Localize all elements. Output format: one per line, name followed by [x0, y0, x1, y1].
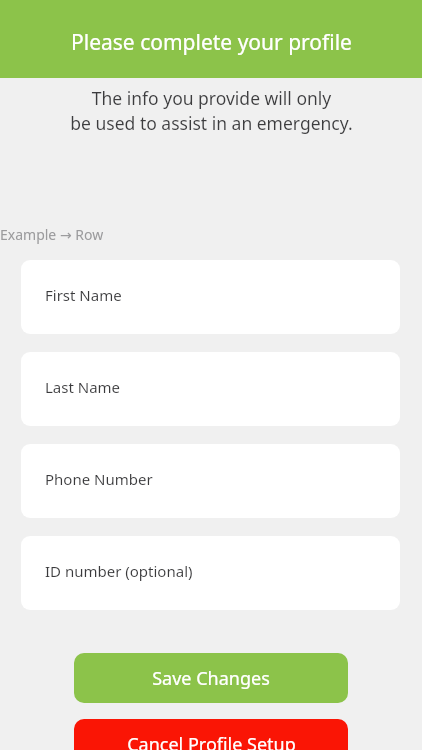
- staticText: Please complete your profile: [71, 28, 352, 57]
- button[interactable]: Cancel Profile Setup: [74, 719, 348, 750]
- staticText: Cancel Profile Setup: [127, 732, 296, 750]
- staticText: Phone Number: [45, 469, 153, 489]
- staticText: Last Name: [45, 377, 121, 397]
- staticText: Example → Row: [0, 225, 104, 244]
- button[interactable]: Phone Number: [21, 444, 400, 518]
- button[interactable]: First Name: [21, 260, 400, 334]
- staticText: ID number (optional): [45, 561, 193, 581]
- staticText: First Name: [45, 285, 122, 305]
- button[interactable]: ID number (optional): [21, 536, 400, 610]
- button[interactable]: Last Name: [21, 352, 400, 426]
- staticText: Save Changes: [152, 666, 270, 691]
- button[interactable]: Save Changes: [74, 653, 348, 703]
- staticText: The info you provide will only be used t…: [70, 86, 353, 136]
